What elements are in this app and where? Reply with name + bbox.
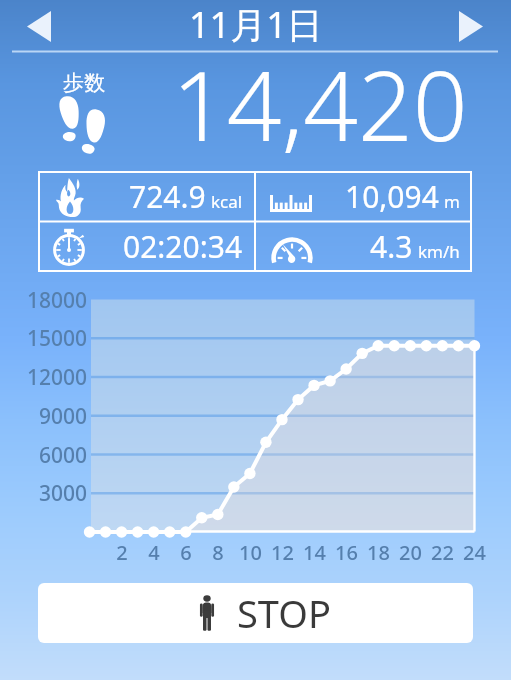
staticText: 16 xyxy=(335,539,358,561)
staticText: 6000 xyxy=(38,441,87,463)
staticText: kcal xyxy=(211,190,243,213)
staticText: 22 xyxy=(431,539,454,561)
staticText: 02:20:34 xyxy=(123,226,243,267)
button[interactable]: STOP xyxy=(38,583,473,643)
staticText: 724.9 xyxy=(129,176,206,217)
staticText: 2 xyxy=(116,539,128,561)
staticText: 18000 xyxy=(26,286,87,308)
staticText: 6 xyxy=(180,539,192,561)
button[interactable]: 724.9 xyxy=(38,171,255,221)
staticText: 歩数 xyxy=(63,70,105,96)
staticText: 10 xyxy=(239,539,262,561)
button[interactable]: 10,094 xyxy=(255,171,472,221)
staticText: 20 xyxy=(399,539,422,561)
staticText: STOP xyxy=(237,587,331,639)
button[interactable]: Next day xyxy=(445,4,497,48)
staticText: 8 xyxy=(212,539,224,561)
staticText: 15000 xyxy=(26,324,87,346)
staticText: 24 xyxy=(463,539,486,561)
staticText: 14,420 xyxy=(172,38,468,169)
staticText: 12 xyxy=(271,539,294,561)
staticText: m xyxy=(444,190,460,213)
staticText: 11月1日 xyxy=(189,0,323,49)
staticText: km/h xyxy=(418,240,460,263)
staticText: 18 xyxy=(367,539,390,561)
staticText: 4 xyxy=(148,539,160,561)
staticText: 14 xyxy=(303,539,326,561)
button[interactable]: 4.3 xyxy=(255,221,472,272)
button[interactable]: 02:20:34 xyxy=(38,221,255,272)
staticText: 9000 xyxy=(38,402,87,424)
staticText: 12000 xyxy=(26,363,87,385)
button[interactable]: Previous day xyxy=(13,4,65,48)
staticText: 10,094 xyxy=(345,176,439,217)
staticText: 3000 xyxy=(38,479,87,501)
staticText: 4.3 xyxy=(370,226,413,267)
